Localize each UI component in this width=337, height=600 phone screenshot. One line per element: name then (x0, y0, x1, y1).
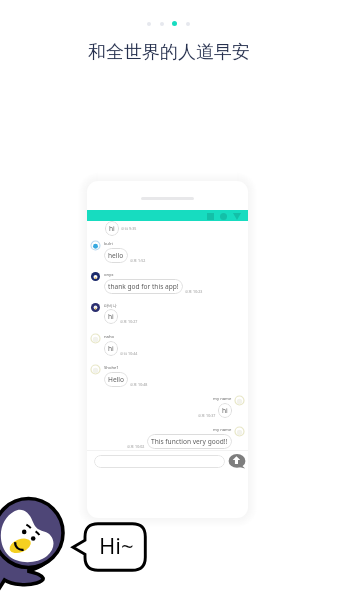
staticText: naho (104, 334, 115, 340)
staticText: my name (213, 427, 232, 433)
staticText: 和全世界的人道早安 (88, 41, 250, 64)
button[interactable]: hello (108, 251, 124, 260)
staticText: hi (222, 406, 228, 415)
staticText: 오후 10:37 (198, 413, 216, 418)
button[interactable]: Send (228, 453, 246, 469)
button[interactable]: Page 2 (160, 22, 164, 26)
button[interactable]: This function very good!! (151, 437, 228, 446)
button[interactable]: hi (108, 344, 114, 353)
staticText: thank god for this app! (108, 282, 179, 291)
staticText: Shohe1 (104, 365, 119, 371)
staticText: 오전 10:44 (120, 351, 138, 356)
button[interactable]: thank god for this app! (108, 282, 179, 291)
staticText: 오후 1:52 (130, 258, 146, 263)
staticText: hi (108, 344, 114, 353)
staticText: hi (108, 312, 114, 321)
staticText: hello (108, 251, 124, 260)
staticText: 오전 9:35 (121, 226, 137, 231)
staticText: 오후 10:27 (120, 319, 138, 324)
staticText: onyx (104, 272, 114, 278)
staticText: Hello (108, 375, 124, 384)
staticText: 오후 10:48 (130, 382, 148, 387)
button[interactable]: Page 3 (172, 21, 177, 26)
staticText: my name (213, 396, 232, 402)
staticText: 오후 10:23 (185, 289, 203, 294)
staticText: Hi~ (99, 530, 134, 560)
button[interactable]: Message input (94, 455, 225, 468)
staticText: kulri (104, 241, 113, 247)
button[interactable]: hi (222, 406, 228, 415)
button[interactable]: Page 4 (186, 22, 190, 26)
staticText: 오후 10:02 (127, 444, 145, 449)
staticText: 파비나 (104, 303, 117, 308)
staticText: hi (109, 224, 115, 233)
button[interactable]: hi (109, 224, 115, 233)
button[interactable]: Page 1 (147, 22, 151, 26)
staticText: This function very good!! (151, 437, 228, 446)
button[interactable]: hi (108, 312, 114, 321)
button[interactable]: Hello (108, 375, 124, 384)
